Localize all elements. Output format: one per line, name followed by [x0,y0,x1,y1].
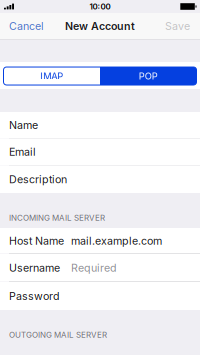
staticText: Username [9,261,60,274]
button[interactable]: Name [0,112,200,138]
button[interactable]: Cancel [0,13,52,39]
staticText: Host Name [9,234,64,247]
staticText: POP [139,70,158,82]
staticText: mail.example.com [71,234,162,247]
staticText: OUTGOING MAIL SERVER [9,330,107,340]
staticText: Email [9,145,36,158]
button[interactable]: Username [0,254,200,282]
button[interactable]: Host Name [0,228,200,254]
button[interactable]: Password [0,282,200,310]
button[interactable]: Email [0,138,200,165]
button[interactable]: Save [157,13,200,39]
staticText: 10:00 [89,2,110,11]
button[interactable]: Description [0,165,200,193]
staticText: Password [9,289,60,302]
staticText: New Account [65,19,135,32]
staticText: Required [71,261,117,274]
staticText: INCOMING MAIL SERVER [9,213,105,223]
button[interactable]: POP [100,67,196,85]
staticText: Cancel [9,19,44,32]
staticText: Save [165,19,190,32]
staticText: Description [9,173,67,186]
staticText: IMAP [40,70,63,82]
staticText: Name [9,118,38,131]
button[interactable]: IMAP [3,67,100,85]
